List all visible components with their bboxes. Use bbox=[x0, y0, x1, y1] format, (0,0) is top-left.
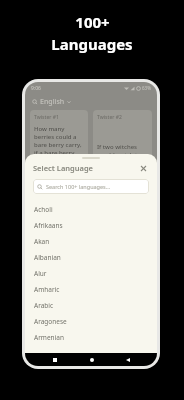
staticText: If two witches would watch two watches, … bbox=[97, 143, 148, 167]
button[interactable]: Aragonese bbox=[25, 313, 157, 329]
button[interactable]: English bbox=[25, 94, 157, 110]
staticText: Afrikaans bbox=[34, 221, 63, 230]
button[interactable]: Search 100+ languages... bbox=[33, 179, 149, 194]
staticText: Arabic bbox=[34, 301, 54, 310]
button[interactable]: Close bbox=[138, 163, 149, 174]
staticText: Languages bbox=[51, 34, 133, 54]
staticText: Albanian bbox=[34, 253, 61, 262]
button[interactable]: Alur bbox=[25, 265, 157, 281]
staticText: Armenian bbox=[34, 333, 64, 342]
button[interactable]: Twister #1 bbox=[30, 110, 88, 220]
staticText: Twister #2 bbox=[97, 114, 122, 121]
staticText: Amharic bbox=[34, 285, 60, 294]
staticText: Twister #1 bbox=[34, 114, 59, 121]
staticText: Search 100+ languages... bbox=[46, 183, 111, 190]
staticText: Acholi bbox=[34, 205, 53, 214]
button[interactable]: Home bbox=[85, 353, 98, 366]
button[interactable]: Acholi bbox=[25, 201, 157, 217]
staticText: Aragonese bbox=[34, 317, 67, 326]
button[interactable]: Afrikaans bbox=[25, 217, 157, 233]
staticText: Select Language bbox=[33, 163, 93, 173]
button[interactable]: Albanian bbox=[25, 249, 157, 265]
button[interactable]: Recent apps bbox=[48, 353, 61, 366]
staticText: How many berries could a bare berry carr… bbox=[34, 125, 84, 181]
button[interactable]: Arabic bbox=[25, 297, 157, 313]
button[interactable]: Amharic bbox=[25, 281, 157, 297]
staticText: 9:06 bbox=[31, 85, 41, 92]
staticText: 100+ bbox=[75, 12, 110, 32]
staticText: English bbox=[40, 97, 65, 107]
button[interactable]: Armenian bbox=[25, 329, 157, 345]
button[interactable]: Back bbox=[121, 353, 134, 366]
staticText: Akan bbox=[34, 237, 50, 246]
button[interactable]: Akan bbox=[25, 233, 157, 249]
button[interactable]: Twister #2 bbox=[93, 110, 152, 220]
staticText: Alur bbox=[34, 269, 47, 278]
staticText: 63% bbox=[142, 85, 151, 91]
